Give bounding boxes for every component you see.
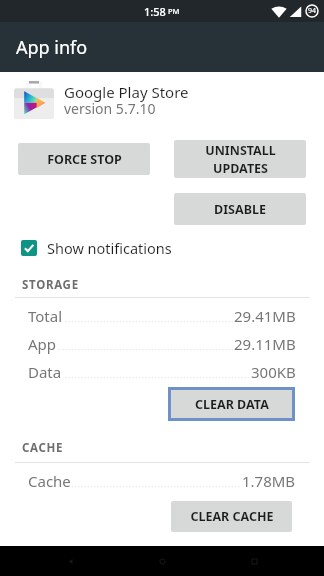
staticText: App bbox=[28, 334, 57, 354]
staticText: Google Play Store bbox=[64, 82, 189, 102]
button[interactable]: CLEAR DATA bbox=[171, 390, 292, 418]
button[interactable]: DISABLE bbox=[174, 193, 306, 225]
staticText: PM bbox=[168, 6, 180, 16]
staticText: Cache bbox=[28, 471, 71, 491]
button[interactable]: UNINSTALL UPDATES bbox=[174, 140, 306, 178]
staticText: App info bbox=[16, 35, 88, 60]
staticText: version 5.7.10 bbox=[64, 99, 156, 118]
staticText: Data bbox=[28, 362, 62, 382]
button[interactable]: Show notifications bbox=[21, 236, 324, 260]
staticText: DISABLE bbox=[214, 201, 266, 218]
staticText: Total bbox=[28, 306, 63, 326]
staticText: STORAGE bbox=[22, 277, 79, 293]
button[interactable]: Total bbox=[0, 302, 324, 330]
staticText: 1.78MB bbox=[242, 471, 296, 491]
button[interactable]: Cache bbox=[0, 467, 324, 495]
staticText: 94 bbox=[308, 6, 317, 16]
staticText: CACHE bbox=[22, 440, 64, 456]
staticText: UNINSTALL UPDATES bbox=[205, 142, 276, 176]
staticText: 29.11MB bbox=[234, 334, 296, 354]
button[interactable]: Data bbox=[0, 358, 324, 386]
button[interactable]: CLEAR CACHE bbox=[171, 501, 292, 532]
staticText: 29.41MB bbox=[234, 306, 296, 326]
button[interactable]: App bbox=[0, 330, 324, 358]
staticText: CLEAR CACHE bbox=[190, 508, 274, 525]
staticText: 300KB bbox=[251, 362, 296, 382]
staticText: Show notifications bbox=[47, 238, 172, 258]
staticText: 1:58 bbox=[144, 4, 166, 19]
staticText: FORCE STOP bbox=[47, 151, 122, 168]
button[interactable]: FORCE STOP bbox=[18, 143, 150, 175]
staticText: CLEAR DATA bbox=[195, 396, 269, 413]
